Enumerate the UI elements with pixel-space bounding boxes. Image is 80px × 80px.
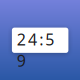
staticText: 24:59: [17, 29, 65, 50]
button[interactable]: 24:59: [12, 28, 68, 53]
